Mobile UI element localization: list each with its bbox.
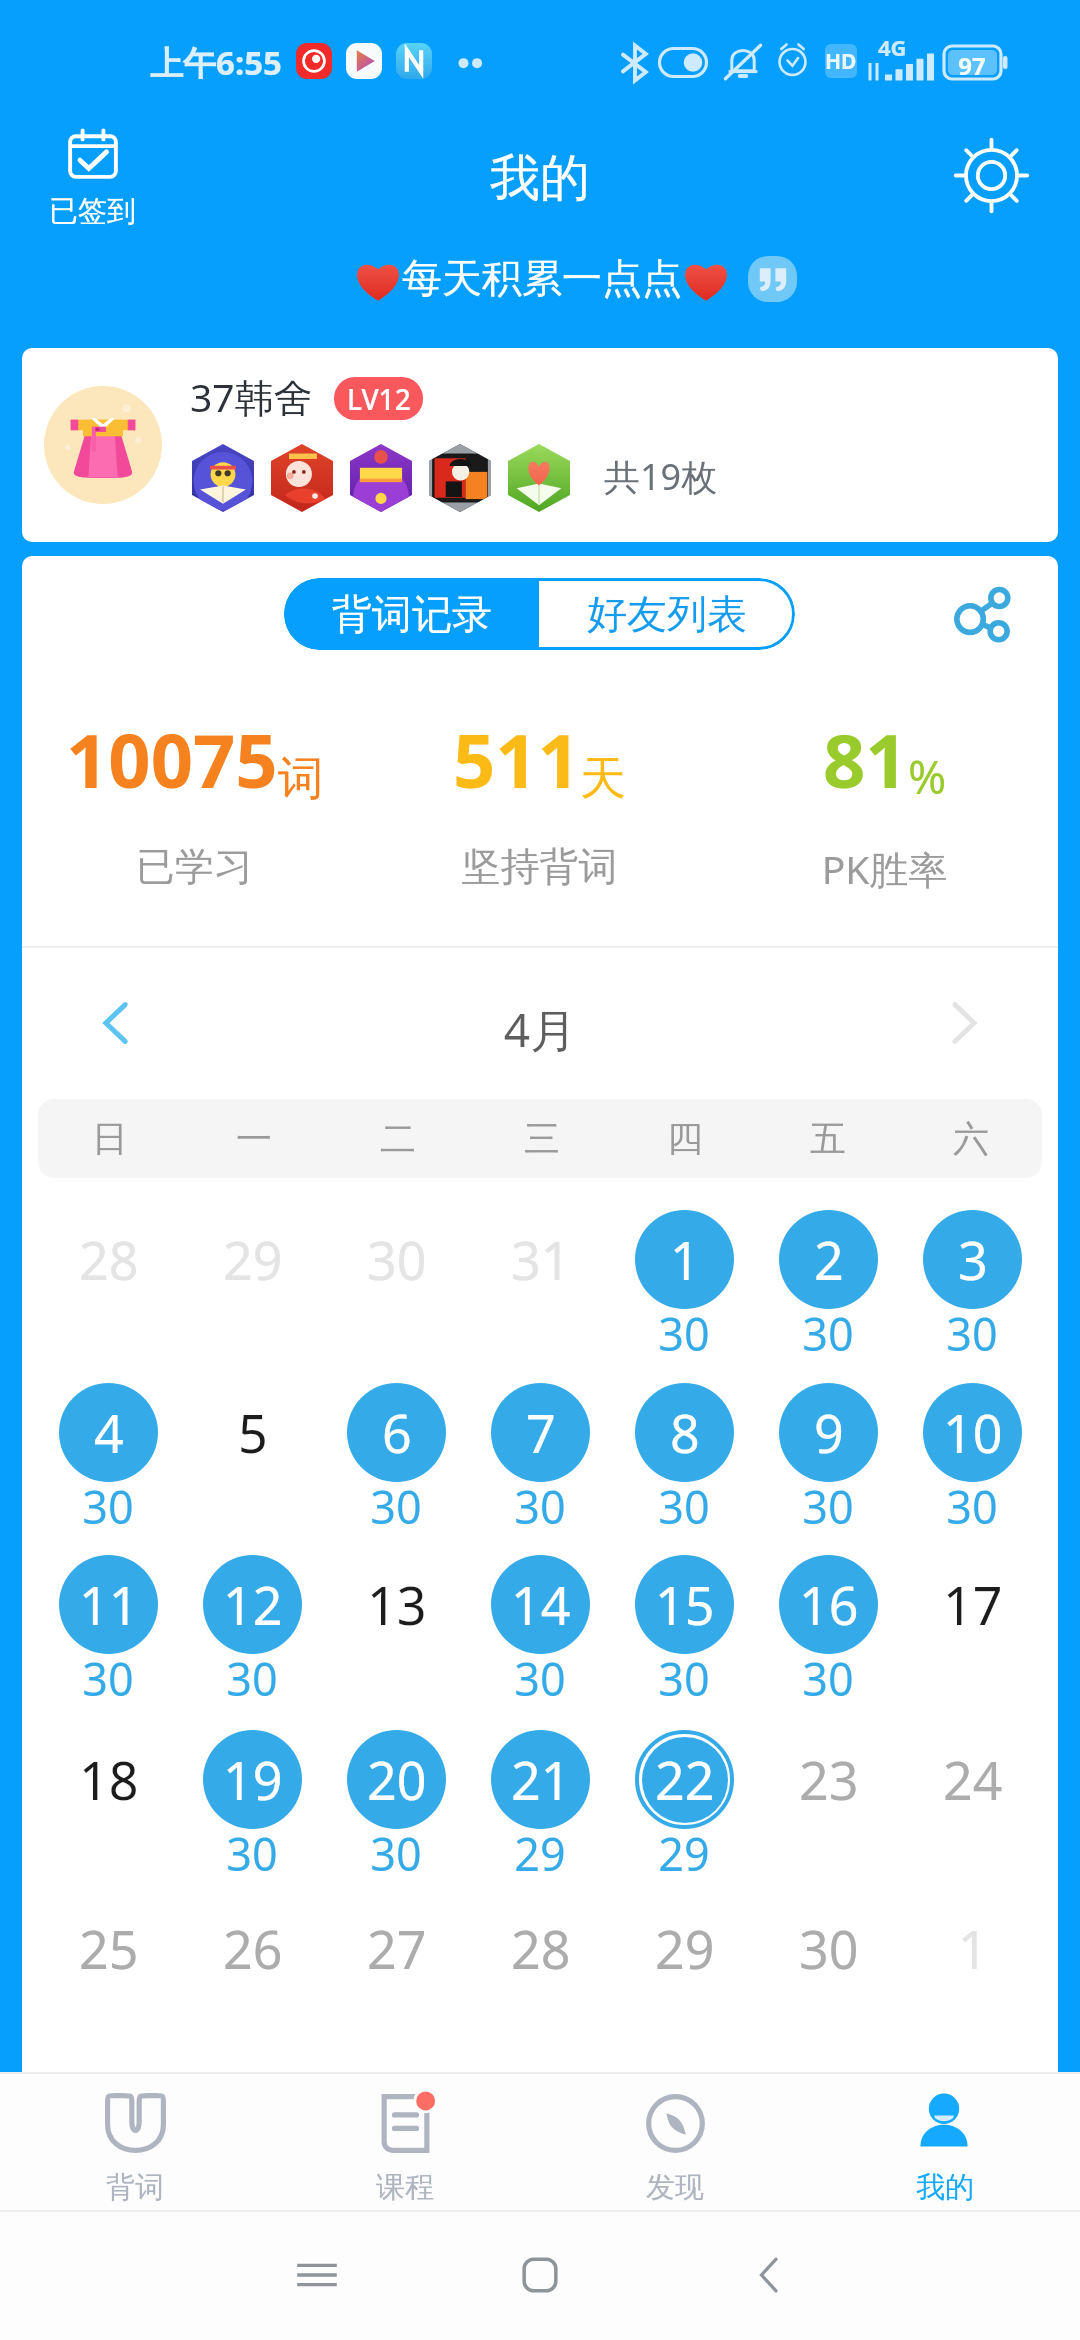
staticText: 511 (453, 709, 580, 810)
staticText: 背词 (0, 2169, 270, 2206)
button[interactable]: 25 (36, 1899, 180, 2044)
staticText: 37韩舍 (190, 370, 313, 423)
staticText: 四 (667, 1116, 703, 1161)
button[interactable]: 背词 (0, 2074, 270, 2210)
staticText: 我的 (810, 2169, 1080, 2206)
button[interactable]: 30 (324, 1210, 468, 1355)
staticText: LV12 (347, 380, 411, 418)
staticText: 30 (180, 1823, 324, 1884)
staticText: 词 (278, 750, 324, 808)
button[interactable]: 8 (612, 1383, 756, 1528)
button[interactable]: 27 (324, 1899, 468, 2044)
button[interactable]: Next month (918, 976, 1010, 1070)
staticText: 六 (953, 1116, 989, 1161)
staticText: 14 (511, 1569, 571, 1640)
staticText: 30 (36, 1648, 180, 1709)
button[interactable]: 12 (180, 1555, 324, 1700)
staticText: 17 (943, 1569, 1003, 1640)
button[interactable]: 30 (756, 1899, 900, 2044)
button[interactable]: 21 (468, 1730, 612, 1875)
staticText: 3 (958, 1224, 988, 1295)
button[interactable]: 16 (756, 1555, 900, 1700)
button[interactable]: 每天积累一点点 (354, 248, 797, 310)
button[interactable]: 6 (324, 1383, 468, 1528)
staticText: 30 (756, 1303, 900, 1364)
button[interactable]: 29 (612, 1899, 756, 2044)
button[interactable]: 9 (756, 1383, 900, 1528)
staticText: 26 (223, 1913, 283, 1984)
button[interactable]: 5 (180, 1383, 324, 1528)
button[interactable]: 20 (324, 1730, 468, 1875)
button[interactable]: 10075 (22, 709, 367, 909)
button[interactable]: Home (518, 2253, 562, 2297)
button[interactable]: 23 (756, 1730, 900, 1875)
staticText: 好友列表 (587, 589, 747, 639)
staticText: 8 (670, 1397, 700, 1468)
staticText: 30 (756, 1476, 900, 1537)
button[interactable]: 3 (900, 1210, 1044, 1355)
button[interactable]: 我的 (810, 2074, 1080, 2210)
staticText: 30 (36, 1476, 180, 1537)
staticText: 28 (79, 1224, 139, 1295)
button[interactable]: 37韩舍 (22, 348, 1058, 542)
button[interactable]: 4 (36, 1383, 180, 1528)
button[interactable]: 已签到 (37, 129, 148, 230)
button[interactable]: 28 (468, 1899, 612, 2044)
staticText: 21 (511, 1744, 571, 1815)
staticText: 上午6:55 (150, 40, 282, 85)
button[interactable]: 背词记录 (284, 578, 539, 650)
button[interactable]: Share (938, 570, 1028, 660)
staticText: 29 (612, 1823, 756, 1884)
button[interactable]: Previous month (70, 976, 162, 1070)
staticText: 29 (223, 1224, 283, 1295)
staticText: 97 (940, 49, 1004, 82)
staticText: 已签到 (49, 193, 136, 230)
button[interactable]: 2 (756, 1210, 900, 1355)
button[interactable]: Back (747, 2253, 791, 2297)
button[interactable]: 13 (324, 1555, 468, 1700)
staticText: 坚持背词 (367, 842, 712, 891)
button[interactable]: Recents (295, 2253, 339, 2297)
button[interactable]: 24 (900, 1730, 1044, 1875)
button[interactable]: 18 (36, 1730, 180, 1875)
staticText: 4 (94, 1397, 124, 1468)
staticText: 日 (92, 1116, 128, 1161)
button[interactable]: 7 (468, 1383, 612, 1528)
button[interactable]: 14 (468, 1555, 612, 1700)
button[interactable]: 29 (180, 1210, 324, 1355)
button[interactable]: 28 (36, 1210, 180, 1355)
staticText: 81 (823, 709, 908, 810)
staticText: 30 (180, 1648, 324, 1709)
button[interactable]: 15 (612, 1555, 756, 1700)
staticText: 5 (238, 1397, 268, 1468)
staticText: 24 (943, 1744, 1003, 1815)
button[interactable]: 10 (900, 1383, 1044, 1528)
staticText: 9 (814, 1397, 844, 1468)
staticText: 13 (367, 1569, 427, 1640)
button[interactable]: 511 (367, 709, 712, 909)
button[interactable]: 课程 (270, 2074, 540, 2210)
button[interactable]: 发现 (540, 2074, 810, 2210)
staticText: 7 (526, 1397, 556, 1468)
button[interactable]: 19 (180, 1730, 324, 1875)
button[interactable]: Settings (939, 123, 1043, 227)
staticText: 三 (524, 1116, 560, 1161)
staticText: 背词记录 (332, 589, 492, 639)
button[interactable]: 22 (612, 1730, 756, 1875)
button[interactable]: 11 (36, 1555, 180, 1700)
staticText: 25 (79, 1913, 139, 1984)
staticText: 课程 (270, 2169, 540, 2206)
button[interactable]: 好友列表 (539, 578, 795, 650)
button[interactable]: 1 (612, 1210, 756, 1355)
staticText: 29 (655, 1913, 715, 1984)
staticText: HD (825, 47, 857, 76)
staticText: PK胜率 (712, 842, 1057, 895)
button[interactable]: 81 (712, 709, 1057, 909)
staticText: 30 (468, 1476, 612, 1537)
staticText: % (908, 745, 947, 808)
button[interactable]: 17 (900, 1555, 1044, 1700)
button[interactable]: 31 (468, 1210, 612, 1355)
button[interactable]: 26 (180, 1899, 324, 2044)
staticText: 我的 (0, 147, 1080, 210)
